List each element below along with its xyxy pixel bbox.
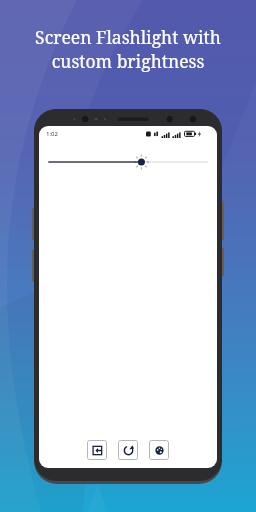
staticText: Screen Flashlight with custom brightness <box>6 25 250 73</box>
button[interactable]: Brightness slider <box>39 152 217 172</box>
button[interactable]: Refresh <box>118 440 138 460</box>
button[interactable]: Color palette <box>149 440 169 460</box>
button[interactable]: Exit <box>87 440 107 460</box>
staticText: 1:02 <box>46 130 58 138</box>
